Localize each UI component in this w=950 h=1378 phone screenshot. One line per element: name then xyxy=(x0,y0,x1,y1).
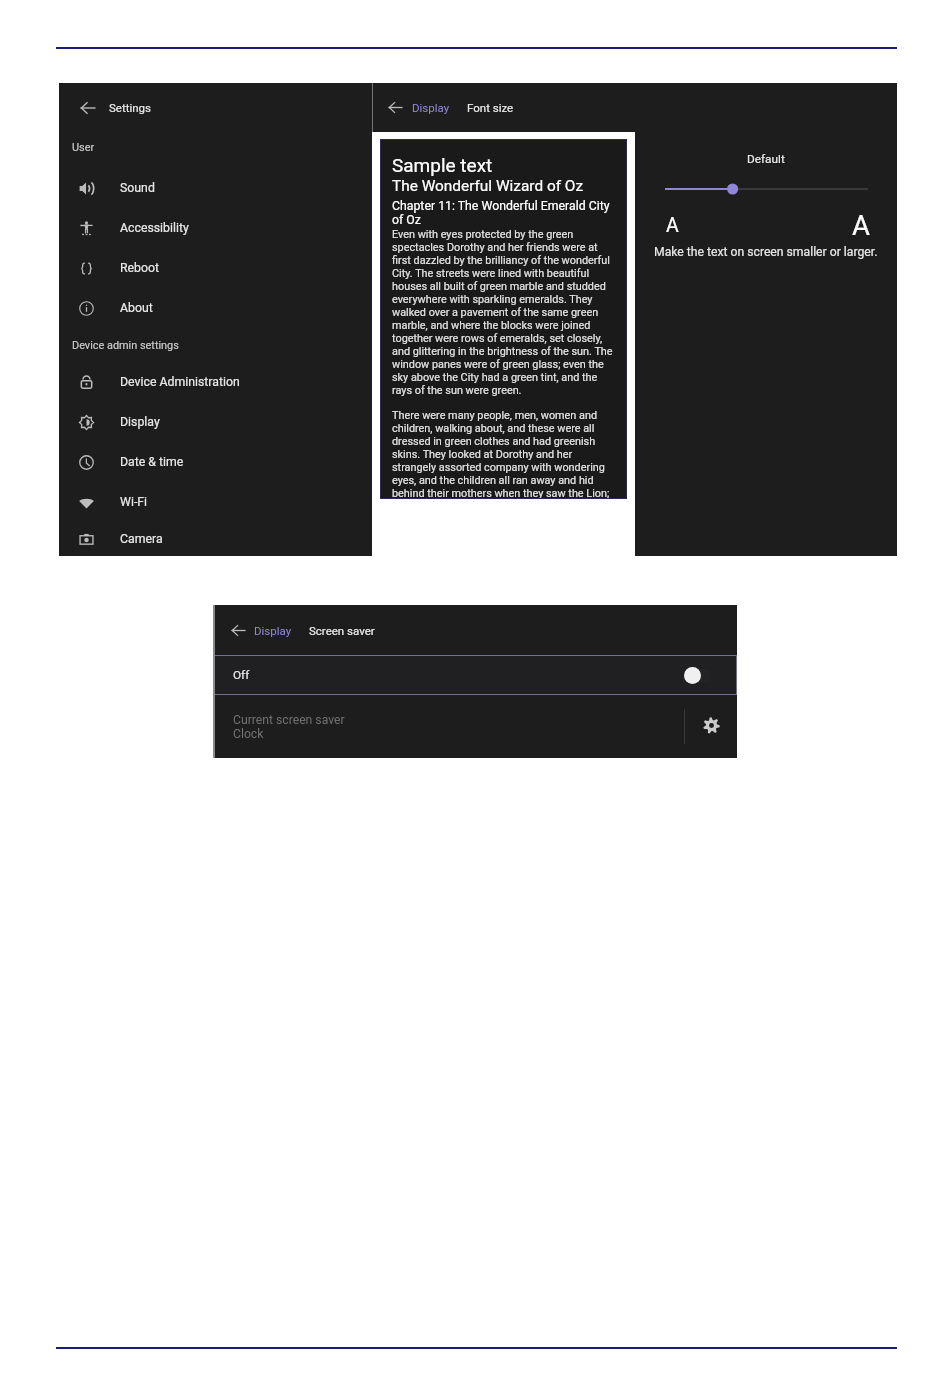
button[interactable]: Sound xyxy=(59,168,372,208)
staticText: The Wonderful Wizard of Oz xyxy=(392,177,584,195)
button[interactable]: Camera xyxy=(59,522,372,556)
button[interactable]: Current screen saver xyxy=(213,695,737,758)
staticText: Current screen saver xyxy=(233,713,345,727)
button[interactable]: Accessibility xyxy=(59,208,372,248)
staticText: A xyxy=(852,209,870,241)
staticText: Wi-Fi xyxy=(120,495,148,509)
staticText: Accessibility xyxy=(120,221,189,235)
staticText: User xyxy=(72,141,95,154)
button[interactable]: Device Administration xyxy=(59,362,372,402)
staticText: Screen saver xyxy=(309,624,375,637)
button[interactable]: Off xyxy=(213,655,737,695)
button[interactable]: Screen saver settings xyxy=(685,695,737,758)
staticText: About xyxy=(120,301,153,315)
button[interactable]: About xyxy=(59,288,372,328)
staticText: A xyxy=(666,214,679,237)
other: Back xyxy=(231,623,246,638)
staticText: Device Administration xyxy=(120,375,240,389)
other: Back xyxy=(388,100,403,115)
staticText: Chapter 11: The Wonderful Emerald City o… xyxy=(392,199,617,227)
staticText: Off xyxy=(233,668,250,682)
staticText: Display xyxy=(254,624,292,637)
staticText: Camera xyxy=(120,532,163,546)
staticText: Sample text xyxy=(392,154,493,176)
button[interactable]: Reboot xyxy=(59,248,372,288)
staticText: Device admin settings xyxy=(72,339,179,352)
staticText: Date & time xyxy=(120,455,184,469)
staticText: Display xyxy=(412,101,450,114)
staticText: Even with eyes protected by the green sp… xyxy=(392,228,617,397)
staticText: Settings xyxy=(109,101,151,114)
staticText: There were many people, men, women and c… xyxy=(392,409,617,499)
staticText: Sound xyxy=(120,181,155,195)
button[interactable]: Back xyxy=(59,83,372,132)
button[interactable]: Wi-Fi xyxy=(59,482,372,522)
staticText: Font size xyxy=(467,101,514,114)
staticText: Reboot xyxy=(120,261,160,275)
button[interactable]: Date & time xyxy=(59,442,372,482)
button[interactable]: Display xyxy=(59,402,372,442)
staticText: Make the text on screen smaller or large… xyxy=(654,245,878,259)
staticText: Clock xyxy=(233,727,264,741)
staticText: Default xyxy=(747,152,785,166)
other: Back xyxy=(80,100,96,116)
staticText: Display xyxy=(120,415,160,429)
